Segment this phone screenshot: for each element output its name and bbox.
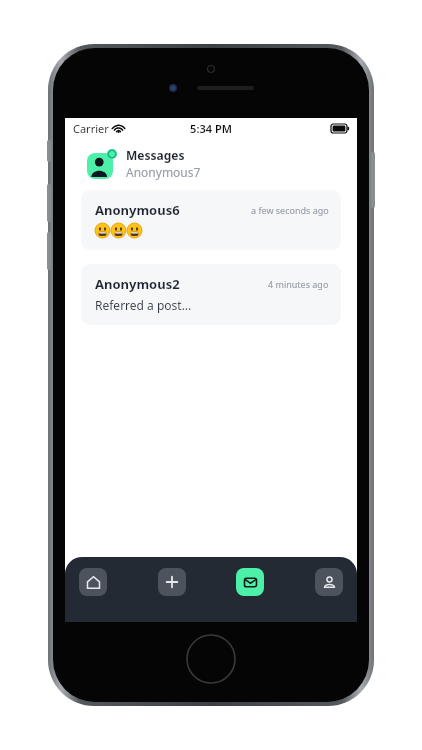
- button[interactable]: Messages: [236, 568, 264, 596]
- button[interactable]: Profile: [315, 568, 343, 596]
- button[interactable]: Anonymous2: [81, 264, 341, 325]
- button[interactable]: Anonymous6: [81, 190, 341, 250]
- staticText: Anonymous7: [126, 164, 201, 180]
- staticText: a few seconds ago: [251, 204, 329, 216]
- staticText: Anonymous6: [95, 201, 180, 219]
- button[interactable]: Home: [79, 568, 107, 596]
- button[interactable]: Create post: [158, 568, 186, 596]
- staticText: Carrier: [73, 121, 109, 136]
- staticText: Referred a post...: [95, 297, 192, 313]
- staticText: Messages: [126, 147, 185, 163]
- staticText: 5:34 PM: [190, 121, 232, 136]
- button[interactable]: Messages: [87, 147, 341, 180]
- staticText: 4 minutes ago: [268, 278, 329, 290]
- staticText: Anonymous2: [95, 275, 180, 293]
